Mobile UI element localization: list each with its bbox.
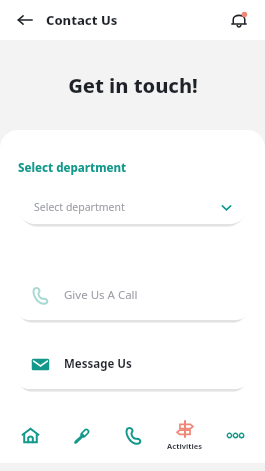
button[interactable]: Message Us — [18, 338, 247, 389]
button[interactable]: Notifications — [225, 6, 253, 34]
button[interactable]: Calls — [108, 407, 159, 463]
button[interactable]: Select department — [18, 190, 247, 224]
button[interactable]: More — [210, 407, 261, 463]
button[interactable]: Give Us A Call — [18, 269, 247, 320]
button[interactable]: Voice — [56, 407, 108, 463]
button[interactable]: Activities — [159, 407, 210, 463]
staticText: Select department — [34, 200, 125, 214]
staticText: Get in touch! — [68, 72, 198, 99]
button[interactable]: Back — [12, 7, 38, 33]
staticText: Select department — [18, 160, 127, 176]
button[interactable]: Home — [4, 407, 56, 463]
staticText: Contact Us — [46, 11, 118, 29]
staticText: Give Us A Call — [64, 287, 138, 303]
staticText: Activities — [167, 441, 202, 451]
staticText: Message Us — [64, 356, 132, 372]
